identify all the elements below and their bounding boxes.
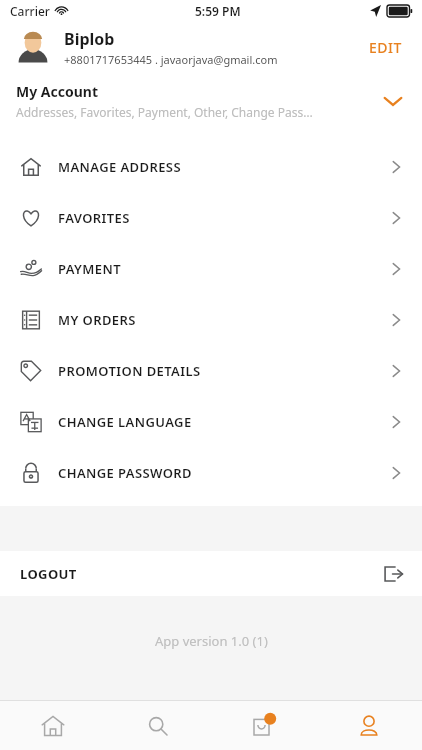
button[interactable]: FAVORITES <box>0 192 422 243</box>
staticText: +8801717653445 . javaorjava@gmail.com <box>64 52 278 67</box>
button[interactable]: PROMOTION DETAILS <box>0 345 422 396</box>
staticText: FAVORITES <box>58 209 388 227</box>
button[interactable]: CHANGE PASSWORD <box>0 447 422 498</box>
button[interactable]: PAYMENT <box>0 243 422 294</box>
button[interactable]: Home <box>0 701 105 750</box>
staticText: CHANGE PASSWORD <box>58 464 388 482</box>
staticText: MY ORDERS <box>58 311 388 329</box>
staticText: App version 1.0 (1) <box>155 632 268 650</box>
button[interactable]: LOGOUT <box>0 551 422 596</box>
button[interactable]: MY ORDERS <box>0 294 422 345</box>
staticText: LOGOUT <box>20 565 382 583</box>
staticText: EDIT <box>369 38 402 57</box>
staticText: Carrier <box>10 3 50 19</box>
staticText: MANAGE ADDRESS <box>58 158 388 176</box>
button[interactable]: CHANGE LANGUAGE <box>0 396 422 447</box>
button[interactable]: Profile <box>316 701 422 750</box>
staticText: My Account <box>16 82 98 101</box>
button[interactable]: Search <box>105 701 210 750</box>
button[interactable]: EDIT <box>365 32 406 63</box>
button[interactable]: Cart, 1 item <box>210 701 316 750</box>
staticText: Biplob <box>64 28 115 50</box>
staticText: CHANGE LANGUAGE <box>58 413 388 431</box>
staticText: PAYMENT <box>58 260 388 278</box>
staticText: PROMOTION DETAILS <box>58 362 388 380</box>
staticText: Addresses, Favorites, Payment, Other, Ch… <box>16 104 313 120</box>
staticText: 5:59 PM <box>195 3 241 19</box>
button[interactable]: My Account <box>0 73 422 129</box>
button[interactable]: MANAGE ADDRESS <box>0 141 422 192</box>
